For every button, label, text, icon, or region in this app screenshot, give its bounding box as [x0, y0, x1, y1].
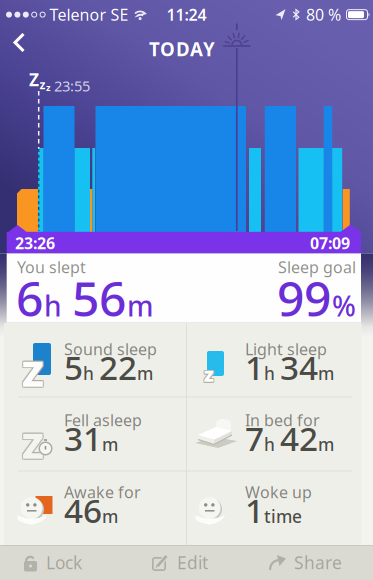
staticText: m	[127, 287, 154, 324]
staticText: Edit	[177, 551, 208, 574]
staticText: 6	[16, 266, 43, 330]
staticText: 34	[280, 345, 318, 389]
staticText: m	[318, 362, 334, 385]
button[interactable]: Lock	[24, 548, 82, 577]
staticText: Light sleep	[245, 338, 327, 360]
staticText: Z	[23, 420, 45, 468]
staticText: Sound sleep	[64, 338, 157, 360]
staticText: %	[332, 287, 356, 324]
staticText: 31	[64, 416, 102, 460]
staticText: Z	[21, 420, 43, 468]
staticText: m	[318, 433, 334, 456]
staticText: Z	[29, 68, 39, 91]
staticText: 1	[245, 488, 264, 532]
staticText: TODAY	[149, 36, 215, 61]
staticText: h	[83, 362, 94, 385]
staticText: z	[203, 362, 213, 388]
staticText: Z	[21, 348, 43, 396]
staticText: Z	[21, 350, 43, 397]
staticText: Z	[22, 349, 44, 397]
staticText: Z	[23, 350, 45, 397]
staticText: h	[264, 362, 275, 385]
staticText: Woke up	[245, 481, 312, 503]
staticText: Share	[294, 551, 342, 574]
staticText: 80 %	[306, 4, 341, 25]
staticText: m	[137, 362, 153, 385]
staticText: Telenor SE	[50, 4, 129, 25]
staticText: 5	[64, 345, 83, 389]
staticText: z	[39, 77, 45, 92]
staticText: 23:55	[54, 76, 90, 95]
staticText: In bed for	[245, 409, 320, 431]
staticText: 23:26	[15, 232, 55, 254]
staticText: 99	[277, 266, 331, 330]
staticText: Z	[23, 348, 45, 396]
staticText: z	[204, 361, 214, 387]
staticText: z	[46, 81, 51, 93]
staticText: 1	[245, 345, 264, 389]
button[interactable]: Edit	[152, 548, 208, 577]
button[interactable]: Back	[12, 32, 27, 53]
staticText: Z	[21, 422, 43, 469]
staticText: You slept	[17, 256, 86, 278]
staticText: z	[205, 360, 215, 387]
staticText: z	[205, 362, 215, 388]
staticText: m	[102, 505, 118, 528]
staticText: Sleep goal	[278, 256, 356, 278]
staticText: h	[44, 287, 62, 324]
staticText: 22	[99, 345, 137, 389]
staticText: z	[203, 360, 213, 387]
staticText: 56	[72, 266, 126, 330]
staticText: m	[102, 433, 118, 456]
staticText: 42	[280, 416, 318, 460]
button[interactable]: Share	[269, 548, 342, 577]
staticText: h	[264, 433, 275, 456]
staticText: Lock	[46, 551, 82, 574]
staticText: Awake for	[64, 481, 141, 503]
staticText: Z	[23, 422, 45, 469]
staticText: 07:09	[310, 232, 350, 254]
staticText: Fell asleep	[64, 409, 142, 431]
staticText: 11:24	[166, 4, 206, 25]
staticText: 46	[64, 488, 102, 532]
staticText: time	[264, 505, 302, 528]
staticText: 7	[245, 416, 264, 460]
staticText: Z	[22, 421, 44, 469]
